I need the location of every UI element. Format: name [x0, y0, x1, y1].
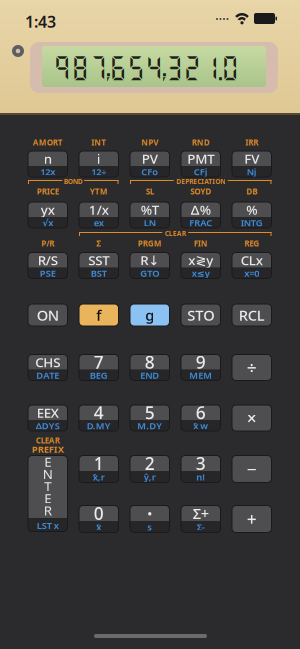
staticText: ex	[94, 216, 104, 229]
staticText: √x	[42, 216, 53, 229]
button[interactable]: 8	[130, 354, 169, 380]
button[interactable]: FV	[232, 151, 271, 177]
staticText: x≤y	[192, 267, 210, 279]
staticText: D.MY	[87, 419, 111, 432]
staticText: BOND	[64, 177, 83, 186]
staticText: END	[140, 369, 159, 381]
button[interactable]: ON	[28, 304, 67, 326]
staticText: FRAC	[189, 216, 212, 229]
staticText: INTG	[241, 216, 263, 229]
staticText: E	[44, 453, 51, 470]
button[interactable]: ÷	[232, 354, 271, 380]
staticText: 12x	[40, 165, 55, 178]
staticText: REG	[244, 238, 259, 249]
staticText: x̂,r	[93, 471, 105, 483]
staticText: ΔDYS	[36, 419, 60, 432]
button[interactable]: ×	[232, 405, 271, 431]
staticText: NPV	[141, 137, 158, 148]
button[interactable]: SST	[79, 252, 118, 278]
button[interactable]: x≷y	[181, 252, 220, 278]
staticText: f	[96, 305, 101, 325]
staticText: x≷y	[188, 251, 213, 269]
staticText: 1:43	[25, 11, 56, 32]
staticText: LST x	[37, 519, 59, 532]
button[interactable]: 5	[130, 405, 169, 431]
staticText: MEM	[189, 369, 212, 381]
button[interactable]: −	[232, 455, 271, 482]
staticText: EEX	[37, 404, 59, 421]
staticText: PRICE	[37, 186, 59, 197]
staticText: E	[44, 489, 51, 507]
button[interactable]: STO	[181, 304, 220, 326]
staticText: n	[44, 150, 52, 167]
button[interactable]: 2	[130, 455, 169, 482]
staticText: Σ+	[193, 504, 209, 523]
staticText: 12÷	[91, 165, 106, 178]
button[interactable]: EEX	[28, 405, 67, 431]
staticText: R↓	[140, 251, 159, 269]
staticText: 0	[94, 502, 104, 525]
button[interactable]: 3	[181, 455, 220, 482]
button[interactable]: RCL	[232, 304, 271, 326]
staticText: N	[43, 465, 53, 483]
button[interactable]: 4	[79, 405, 118, 431]
staticText: INT	[91, 137, 106, 148]
button[interactable]: %T	[130, 202, 169, 228]
button[interactable]: •	[130, 505, 169, 532]
staticText: SST	[88, 251, 109, 269]
button[interactable]: PMT	[181, 151, 220, 177]
button[interactable]: 7	[79, 354, 118, 380]
button[interactable]: n	[28, 151, 67, 177]
button[interactable]: R/S	[28, 252, 67, 278]
button[interactable]: f	[79, 304, 118, 326]
button[interactable]: 1	[79, 455, 118, 482]
button[interactable]: CHS	[28, 354, 67, 380]
staticText: BST	[91, 267, 107, 279]
button[interactable]: +	[232, 505, 271, 532]
staticText: CLx	[241, 251, 263, 269]
staticText: ×	[247, 406, 257, 429]
staticText: Nj	[247, 165, 257, 178]
staticText: n!	[196, 471, 205, 483]
button[interactable]: PV	[130, 151, 169, 177]
button[interactable]: E	[28, 455, 67, 531]
button[interactable]: %	[232, 202, 271, 228]
staticText: 7	[94, 350, 104, 373]
button[interactable]: i	[79, 151, 118, 177]
staticText: STO	[187, 305, 214, 325]
staticText: %T	[141, 201, 159, 218]
button[interactable]: 9	[181, 354, 220, 380]
button[interactable]: CLx	[232, 252, 271, 278]
staticText: RND	[192, 137, 210, 148]
staticText: i	[97, 150, 101, 167]
staticText: PRGM	[138, 238, 162, 249]
staticText: x̄ w	[193, 419, 208, 432]
staticText: Σ	[96, 238, 101, 249]
staticText: YTM	[90, 186, 108, 197]
button[interactable]: 0	[79, 505, 118, 532]
staticText: FIN	[194, 238, 208, 249]
staticText: 6	[196, 401, 206, 424]
staticText: CHS	[35, 353, 60, 371]
staticText: R/S	[38, 251, 58, 269]
staticText: R	[44, 501, 52, 519]
button[interactable]: Σ+	[181, 505, 220, 532]
staticText: 9	[196, 350, 206, 373]
staticText: 1	[94, 452, 104, 475]
staticText: LN	[144, 216, 156, 229]
staticText: 987,654,321.0	[53, 53, 239, 83]
staticText: RCL	[239, 305, 265, 325]
staticText: Δ%	[191, 201, 211, 218]
button[interactable]: g	[130, 304, 169, 326]
staticText: T	[44, 477, 51, 495]
button[interactable]: Δ%	[181, 202, 220, 228]
staticText: 8	[145, 350, 155, 373]
button[interactable]: R↓	[130, 252, 169, 278]
staticText: AMORT	[33, 137, 63, 148]
button[interactable]: 1/x	[79, 202, 118, 228]
staticText: 2	[145, 452, 155, 475]
staticText: DB	[246, 186, 257, 197]
button[interactable]: yx	[28, 202, 67, 228]
staticText: BEG	[90, 369, 108, 381]
button[interactable]: 6	[181, 405, 220, 431]
